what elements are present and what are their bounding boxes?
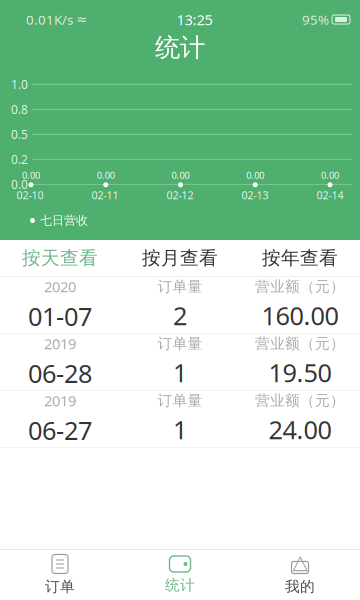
staticText: 统计 [155, 32, 205, 63]
staticText: 02-13 [241, 188, 268, 202]
staticText: 2 [173, 299, 187, 332]
staticText: 2019 [44, 334, 76, 353]
button[interactable]: △ [240, 550, 360, 599]
staticText: 统计 [165, 576, 195, 594]
staticText: 订单量 [157, 278, 202, 296]
button[interactable]: 统计 [120, 550, 240, 599]
staticText: 按月查看 [142, 246, 218, 269]
staticText: 160.00 [261, 299, 338, 332]
staticText: 06-28 [28, 356, 92, 390]
staticText: 02-10 [16, 188, 43, 202]
staticText: 0.8 [11, 101, 28, 117]
staticText: 0.00 [22, 169, 40, 181]
button[interactable]: 按天查看 [0, 240, 120, 276]
staticText: 营业额（元） [255, 392, 345, 410]
staticText: 0.00 [171, 169, 189, 181]
staticText: 13:25 [176, 10, 212, 29]
staticText: 02-12 [166, 188, 193, 202]
button[interactable]: 按月查看 [120, 240, 240, 276]
button[interactable]: 订单 [0, 550, 120, 599]
staticText: 订单量 [157, 392, 202, 410]
staticText: 06-27 [28, 413, 92, 447]
staticText: 营业额（元） [255, 335, 345, 353]
staticText: 1 [173, 356, 187, 389]
staticText: 24.00 [268, 413, 331, 446]
button[interactable]: 按年查看 [240, 240, 360, 276]
staticText: 19.50 [268, 356, 331, 389]
staticText: 按年查看 [262, 246, 338, 269]
button[interactable]: 2019 [0, 391, 360, 447]
staticText: 按天查看 [22, 246, 98, 269]
staticText: 订单 [45, 577, 75, 595]
staticText: 2019 [44, 391, 76, 410]
staticText: 1.0 [11, 76, 28, 92]
staticText: 01-07 [28, 299, 92, 333]
staticText: 0.2 [11, 151, 28, 167]
staticText: 0.00 [246, 169, 264, 181]
button[interactable]: 2019 [0, 334, 360, 390]
staticText: ≈ [76, 12, 87, 27]
staticText: 0.01K/s [26, 11, 73, 28]
staticText: 95% [302, 11, 329, 28]
staticText: 0.0 [11, 176, 28, 192]
staticText: 订单量 [157, 335, 202, 353]
staticText: 七日营收 [40, 213, 88, 228]
staticText: 0.00 [321, 169, 339, 181]
staticText: 02-14 [316, 188, 343, 202]
staticText: 0.00 [97, 169, 115, 181]
staticText: 我的 [285, 577, 315, 595]
staticText: 0.5 [11, 126, 28, 142]
staticText: 2020 [44, 277, 76, 296]
staticText: 营业额（元） [255, 278, 345, 296]
button[interactable]: 2020 [0, 277, 360, 333]
staticText: 02-11 [91, 188, 118, 202]
staticText: △ [292, 551, 307, 573]
staticText: 1 [173, 413, 187, 446]
